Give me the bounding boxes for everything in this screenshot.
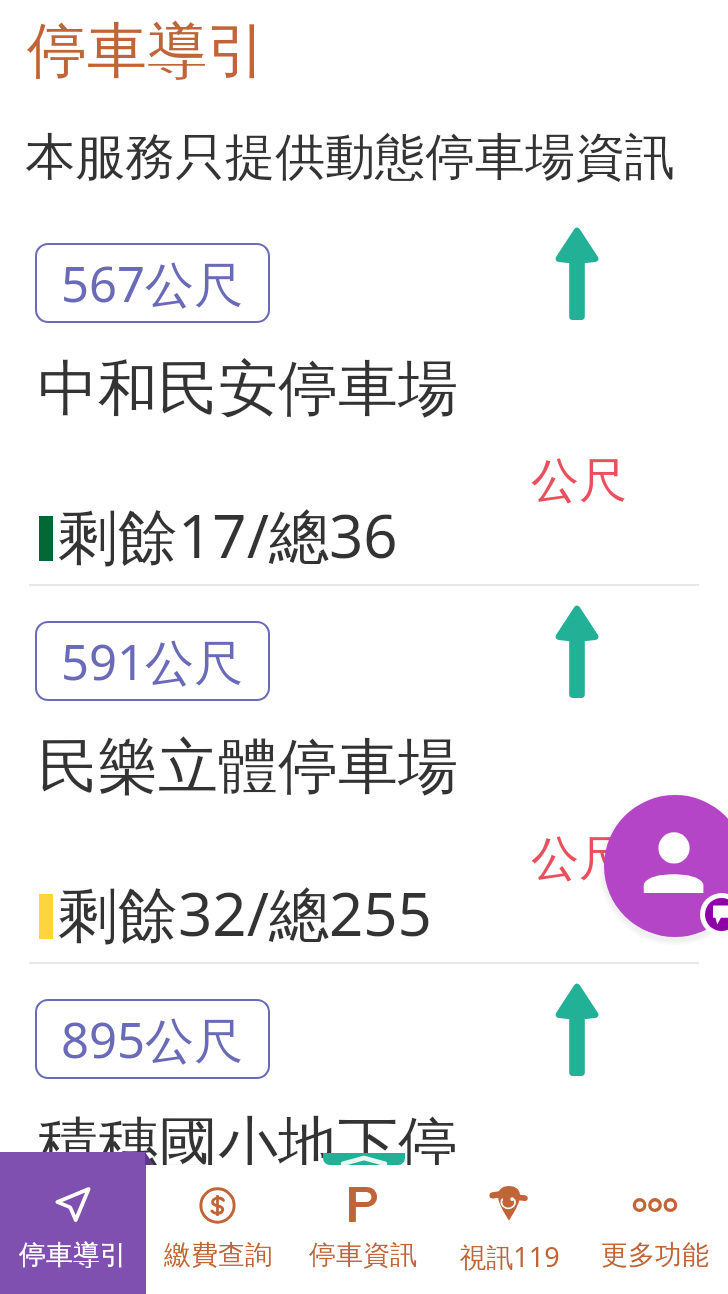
button[interactable]: 停車資訊 xyxy=(290,1152,436,1294)
button[interactable]: 繳費查詢 xyxy=(145,1152,290,1294)
staticText: 停車導引 xyxy=(27,13,267,89)
staticText: 公尺 xyxy=(531,451,627,511)
staticText: 剩餘17/總36 xyxy=(58,494,398,576)
staticText: 民樂立體停車場 xyxy=(38,729,458,805)
staticText: 停車導引 xyxy=(19,1238,127,1272)
staticText: 繳費查詢 xyxy=(164,1238,272,1272)
staticText: 公尺 xyxy=(531,829,627,889)
staticText: 停車資訊 xyxy=(309,1238,417,1272)
button[interactable]: 更多功能 xyxy=(582,1152,728,1294)
staticText: 剩餘32/總255 xyxy=(58,872,432,954)
button[interactable]: 567公尺 xyxy=(0,240,728,618)
staticText: 更多功能 xyxy=(601,1238,709,1272)
button[interactable]: 895公尺 xyxy=(0,996,728,1294)
staticText: 本服務只提供動態停車場資訊 xyxy=(25,126,675,189)
staticText: 積穗國小地下停 xyxy=(38,1107,458,1183)
button[interactable]: 591公尺 xyxy=(0,618,728,996)
staticText: 591公尺 xyxy=(61,628,244,695)
staticText: 567公尺 xyxy=(61,250,244,317)
staticText: 視訊119 xyxy=(459,1238,560,1275)
button[interactable]: Customer service xyxy=(604,795,728,937)
button[interactable]: 停車導引 xyxy=(0,1152,145,1294)
staticText: 中和民安停車場 xyxy=(38,351,458,427)
button[interactable]: 視訊119 xyxy=(436,1152,582,1294)
staticText: 895公尺 xyxy=(61,1006,244,1073)
staticText: 公尺 xyxy=(531,1207,627,1267)
